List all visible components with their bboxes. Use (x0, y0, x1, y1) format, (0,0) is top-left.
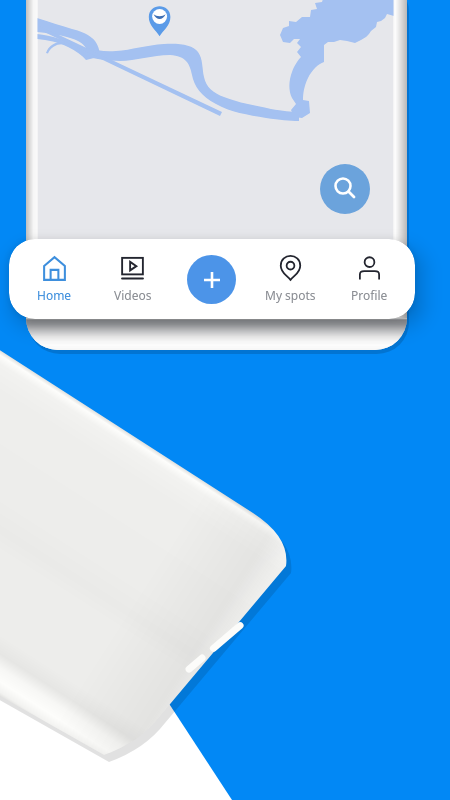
button[interactable]: Profile (330, 239, 409, 319)
button[interactable]: Add (187, 255, 236, 304)
button[interactable]: My spots (251, 239, 330, 319)
staticText: Profile (351, 287, 388, 303)
staticText: Videos (114, 287, 152, 303)
staticText: Home (37, 287, 72, 303)
button[interactable]: Home (15, 239, 93, 319)
button[interactable]: Videos (93, 239, 172, 319)
staticText: My spots (265, 287, 316, 303)
